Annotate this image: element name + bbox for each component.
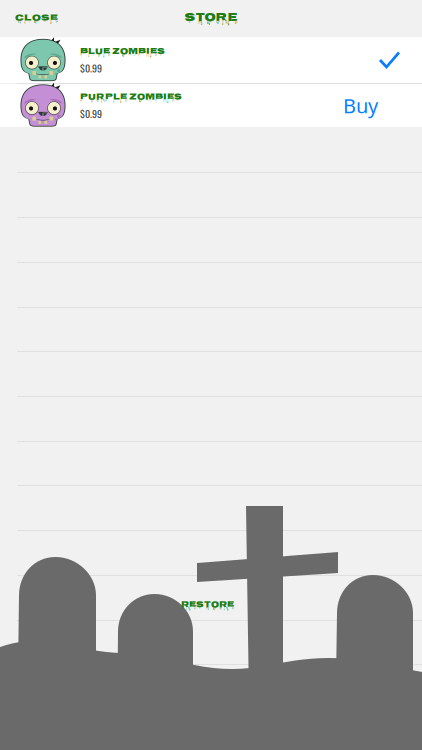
button[interactable]: BLUE ZOMBIES [0, 37, 422, 83]
staticText: PURPLE ZOMBIES [80, 90, 182, 105]
staticText: Buy [343, 92, 378, 119]
button[interactable]: PURPLE ZOMBIES [0, 84, 422, 127]
staticText: RESTORE [181, 598, 234, 613]
staticText: $0.99 [80, 60, 102, 75]
button[interactable]: RESTORE [181, 598, 234, 613]
staticText: CLOSE [15, 10, 58, 27]
staticText: BLUE ZOMBIES [80, 45, 165, 60]
staticText: $0.99 [80, 106, 102, 121]
button[interactable]: CLOSE [0, 0, 68, 37]
staticText: STORE [184, 8, 237, 29]
